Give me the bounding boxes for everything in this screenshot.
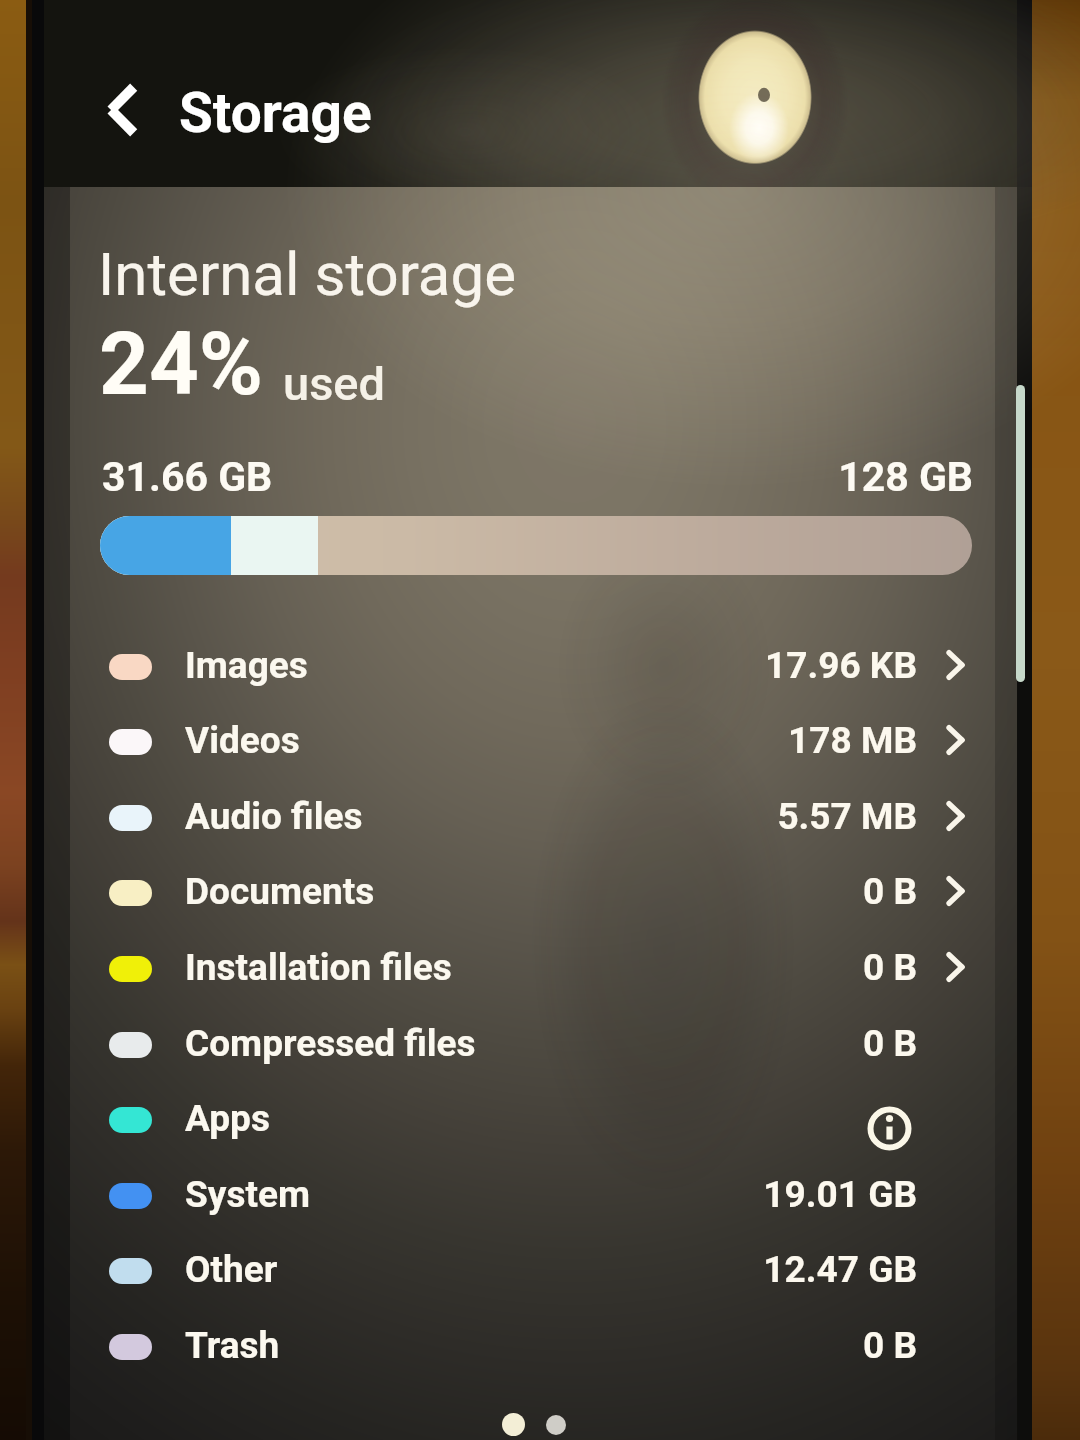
staticText: 0 B [517,1022,917,1065]
staticText: 12.47 GB [517,1248,917,1291]
button[interactable]: Trash [44,1309,1017,1385]
staticText: Storage [179,81,372,145]
button[interactable]: Videos [44,704,1017,780]
staticText: 31.66 GB [102,453,273,501]
staticText: Documents [185,870,375,913]
staticText: Compressed files [185,1022,476,1065]
staticText: 24% [99,313,264,415]
button[interactable]: Images [44,629,1017,705]
staticText: Installation files [185,946,452,989]
staticText: Audio files [185,795,363,838]
staticText: 0 B [517,870,917,913]
staticText: 0 B [517,946,917,989]
button[interactable]: Installation files [44,931,1017,1007]
staticText: 128 GB [647,453,973,501]
staticText: Other [185,1248,278,1291]
button[interactable]: Compressed files [44,1007,1017,1083]
button[interactable]: Audio files [44,780,1017,856]
staticText: 19.01 GB [517,1173,917,1216]
staticText: System [185,1173,310,1216]
staticText: Images [185,644,308,687]
button[interactable]: Documents [44,855,1017,931]
button[interactable]: Other [44,1233,1017,1309]
staticText: Trash [185,1324,280,1367]
staticText: Apps [185,1097,270,1140]
button[interactable]: Back [107,84,136,136]
button[interactable]: Apps [44,1082,1017,1158]
button[interactable]: App info [866,1105,913,1152]
staticText: 5.57 MB [517,795,917,838]
button[interactable]: System [44,1158,1017,1234]
staticText: Internal storage [98,239,517,309]
staticText: 178 MB [517,719,917,762]
staticText: 0 B [517,1324,917,1367]
staticText: Videos [185,719,300,762]
staticText: 17.96 KB [517,644,917,687]
staticText: used [283,356,385,411]
